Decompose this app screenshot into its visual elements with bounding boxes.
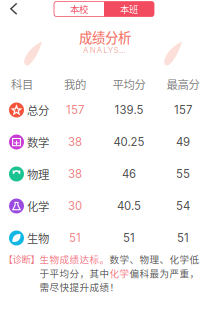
staticText: 40.25	[113, 135, 144, 149]
staticText: 本校	[70, 2, 88, 16]
staticText: 化学	[27, 198, 49, 214]
staticText: 我的	[64, 76, 86, 92]
staticText: 数学	[27, 134, 49, 150]
staticText: 46	[122, 167, 136, 181]
staticText: 51	[123, 231, 135, 245]
staticText: 49	[176, 135, 190, 149]
staticText: 成绩分析	[79, 27, 131, 47]
staticText: 157	[66, 103, 84, 117]
staticText: 38	[68, 135, 82, 149]
button[interactable]: Back	[2, 0, 26, 19]
staticText: 平均分	[112, 76, 145, 92]
staticText: ANALYSIS	[83, 45, 127, 55]
staticText: 55	[176, 167, 190, 181]
staticText: 总分	[27, 102, 49, 118]
staticText: 最高分	[166, 76, 199, 92]
staticText: 生物	[27, 230, 49, 246]
staticText: 科目	[11, 76, 33, 92]
staticText: 40.5	[117, 199, 141, 213]
staticText: 本班	[120, 2, 138, 16]
staticText: 139.5	[114, 103, 143, 117]
staticText: 30	[68, 199, 82, 213]
staticText: 【诊断】	[3, 252, 39, 266]
staticText: 51	[69, 231, 81, 245]
staticText: 51	[177, 231, 189, 245]
staticText: 物理	[27, 166, 49, 182]
button[interactable]: 本校	[54, 1, 104, 16]
staticText: 生物成绩达标。数学、物理、化学低于平均分，其中化学偏科最为严重，需尽快提升成绩！	[39, 252, 199, 294]
button[interactable]: 本班	[104, 1, 154, 16]
staticText: 38	[68, 167, 82, 181]
staticText: 157	[174, 103, 192, 117]
staticText: 54	[176, 199, 190, 213]
